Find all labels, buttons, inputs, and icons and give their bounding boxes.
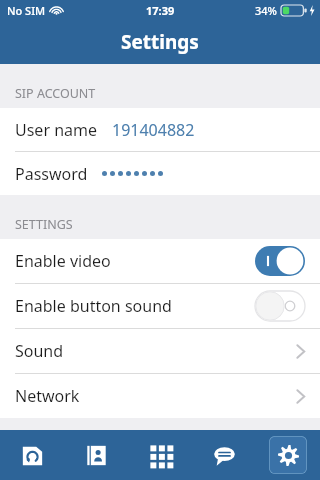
staticText: 191404882 [112,119,195,141]
button[interactable]: Sound [0,329,320,373]
button[interactable]: User name [0,108,320,151]
button[interactable]: Recents [0,430,64,480]
staticText: SIP ACCOUNT [15,85,96,102]
staticText: No SIM [7,3,46,18]
staticText: Password [15,163,88,185]
button[interactable]: Enable video [0,239,320,283]
other: Enable video [255,246,305,276]
button[interactable]: Settings [256,430,320,480]
staticText: Sound [15,340,296,362]
staticText: Enable button sound [15,295,255,317]
button[interactable]: Messages [192,430,256,480]
button[interactable]: Contacts [64,430,128,480]
button[interactable]: Password [0,152,320,195]
staticText: Enable video [15,250,255,272]
staticText: SETTINGS [15,216,73,233]
button[interactable]: Network [0,374,320,418]
staticText: Network [15,385,296,407]
button[interactable]: Enable button sound [0,284,320,328]
staticText: Settings [121,29,199,55]
staticText: 17:39 [146,3,175,18]
staticText: 34% [255,3,277,18]
other: Enable button sound [255,291,305,321]
button[interactable]: Dialpad [128,430,192,480]
staticText: User name [15,119,98,141]
